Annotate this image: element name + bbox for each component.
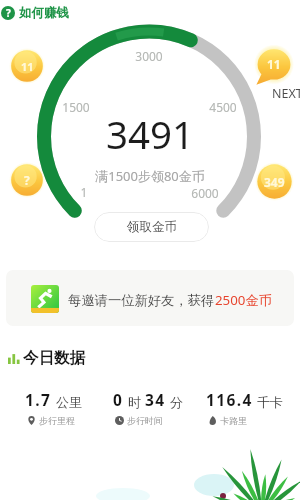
button[interactable]: 每邀请一位新好友，获得 <box>6 270 294 326</box>
staticText: 3491 <box>60 108 240 160</box>
staticText: 11 <box>21 59 34 74</box>
button[interactable]: Coin 11 <box>9 48 45 84</box>
staticText: 4500 <box>198 99 248 115</box>
staticText: 每邀请一位新好友，获得 <box>68 292 215 309</box>
staticText: 1 <box>59 184 109 200</box>
staticText: 0 <box>113 389 124 410</box>
staticText: 分 <box>170 394 183 410</box>
staticText: 领取金币 <box>127 219 177 235</box>
staticText: 2500金币 <box>215 291 273 309</box>
staticText: 3000 <box>124 48 174 64</box>
staticText: NEXT <box>272 85 300 102</box>
button[interactable]: ? <box>1 5 69 21</box>
staticText: 步行里程 <box>39 415 75 426</box>
staticText: ? <box>6 6 11 20</box>
button[interactable]: Coin ? <box>9 162 45 198</box>
button[interactable]: Coin 349 <box>255 162 294 201</box>
staticText: 116.4 <box>206 389 253 410</box>
staticText: 6000 <box>180 185 230 201</box>
staticText: 如何赚钱 <box>19 5 69 21</box>
staticText: 步行时间 <box>127 415 163 426</box>
staticText: 1.7 <box>25 389 52 410</box>
button[interactable]: 领取金币 <box>94 212 209 242</box>
button[interactable]: Coin 11 <box>254 46 294 86</box>
staticText: 1500 <box>51 99 101 115</box>
staticText: 11 <box>267 56 281 72</box>
staticText: 公里 <box>56 394 82 410</box>
staticText: 千卡 <box>257 394 283 410</box>
staticText: 卡路里 <box>220 415 247 426</box>
staticText: 满1500步领80金币 <box>60 167 240 185</box>
staticText: 349 <box>264 174 285 190</box>
staticText: 34 <box>145 389 166 410</box>
staticText: 时 <box>128 394 141 410</box>
staticText: 今日数据 <box>23 348 85 368</box>
staticText: ? <box>24 172 30 188</box>
